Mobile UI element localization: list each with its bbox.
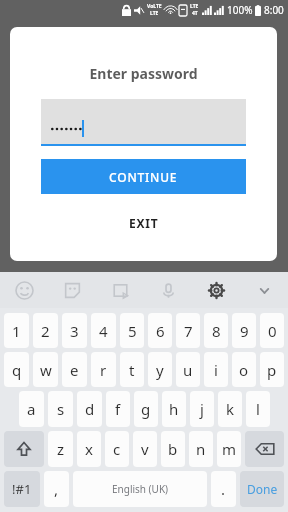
staticText: 9	[240, 321, 249, 341]
button[interactable]: n	[189, 431, 213, 467]
staticText: r	[100, 360, 107, 380]
staticText: !#1	[12, 480, 32, 498]
button[interactable]: q	[4, 352, 29, 387]
staticText: 8	[212, 321, 221, 341]
staticText: 0	[268, 321, 277, 341]
button[interactable]: p	[260, 352, 284, 387]
staticText: English (UK)	[112, 482, 169, 496]
staticText: 6	[156, 321, 165, 341]
button[interactable]: 5	[120, 313, 144, 348]
button[interactable]: EXIT	[107, 209, 181, 237]
button[interactable]: m	[217, 431, 241, 467]
staticText: c	[113, 439, 121, 459]
staticText: m	[222, 439, 237, 459]
button[interactable]: u	[176, 352, 200, 387]
staticText: 1	[12, 321, 21, 341]
button[interactable]: s	[48, 391, 73, 427]
staticText: 3	[70, 321, 79, 341]
button[interactable]: CONTINUE	[41, 159, 246, 194]
staticText: x	[85, 439, 93, 459]
button[interactable]: Shift	[4, 431, 44, 467]
staticText: j	[200, 399, 204, 419]
staticText: 4T	[192, 10, 198, 17]
button[interactable]: 3	[62, 313, 87, 348]
button[interactable]: o	[232, 352, 256, 387]
button[interactable]	[41, 99, 246, 144]
button[interactable]: f	[106, 391, 130, 427]
button[interactable]: 6	[148, 313, 172, 348]
staticText: 100%	[227, 3, 253, 17]
button[interactable]: d	[77, 391, 102, 427]
button[interactable]: j	[190, 391, 214, 427]
button[interactable]: 8	[204, 313, 228, 348]
button[interactable]: a	[19, 391, 44, 427]
staticText: p	[267, 360, 277, 380]
staticText: d	[85, 399, 95, 419]
button[interactable]: b	[161, 431, 185, 467]
button[interactable]: c	[105, 431, 129, 467]
staticText: l	[256, 399, 260, 419]
staticText: EXIT	[129, 215, 159, 231]
staticText: LTE	[150, 10, 159, 17]
staticText: b	[168, 439, 178, 459]
staticText: o	[239, 360, 249, 380]
button[interactable]: Settings	[192, 272, 240, 308]
staticText: 2	[41, 321, 50, 341]
button[interactable]: x	[77, 431, 101, 467]
button[interactable]: Done	[240, 471, 284, 507]
staticText: y	[156, 360, 164, 380]
staticText: ,	[54, 479, 59, 499]
button[interactable]: !#1	[4, 471, 40, 507]
staticText: s	[57, 399, 65, 419]
button[interactable]: 1	[4, 313, 29, 348]
button[interactable]: r	[91, 352, 116, 387]
staticText: w	[40, 360, 52, 380]
button[interactable]: Emoji	[0, 272, 48, 308]
button[interactable]: y	[148, 352, 172, 387]
button[interactable]: Hide keyboard	[240, 272, 288, 308]
staticText: Done	[247, 481, 278, 497]
button[interactable]: 0	[260, 313, 284, 348]
button[interactable]: GIF	[96, 272, 144, 308]
staticText: VoLTE	[147, 3, 162, 10]
staticText: .	[221, 479, 226, 499]
button[interactable]: English (UK)	[73, 471, 207, 507]
button[interactable]: .	[211, 471, 236, 507]
staticText: q	[12, 360, 22, 380]
button[interactable]: i	[204, 352, 228, 387]
button[interactable]: 4	[91, 313, 116, 348]
staticText: 4	[99, 321, 108, 341]
button[interactable]: 9	[232, 313, 256, 348]
button[interactable]: z	[48, 431, 73, 467]
button[interactable]: l	[246, 391, 270, 427]
staticText: k	[226, 399, 235, 419]
staticText: e	[70, 360, 79, 380]
staticText: f	[115, 399, 121, 419]
staticText: i	[214, 360, 218, 380]
button[interactable]: k	[218, 391, 242, 427]
staticText: u	[183, 360, 193, 380]
button[interactable]: t	[120, 352, 144, 387]
staticText: CONTINUE	[109, 169, 178, 185]
button[interactable]: Backspace	[245, 431, 284, 467]
staticText: t	[129, 360, 135, 380]
button[interactable]: e	[62, 352, 87, 387]
button[interactable]: 7	[176, 313, 200, 348]
button[interactable]: g	[134, 391, 158, 427]
staticText: LTE	[190, 3, 199, 10]
button[interactable]: Stickers	[48, 272, 96, 308]
button[interactable]: Voice input	[144, 272, 192, 308]
staticText: 5	[128, 321, 137, 341]
staticText: h	[169, 399, 179, 419]
button[interactable]: h	[162, 391, 186, 427]
staticText: a	[27, 399, 36, 419]
button[interactable]: v	[133, 431, 157, 467]
button[interactable]: ,	[44, 471, 69, 507]
button[interactable]: w	[33, 352, 58, 387]
button[interactable]: 2	[33, 313, 58, 348]
staticText: g	[141, 399, 151, 419]
staticText: n	[196, 439, 206, 459]
staticText: Enter password	[10, 64, 277, 83]
staticText: 8:00	[264, 3, 284, 17]
staticText: 7	[184, 321, 193, 341]
